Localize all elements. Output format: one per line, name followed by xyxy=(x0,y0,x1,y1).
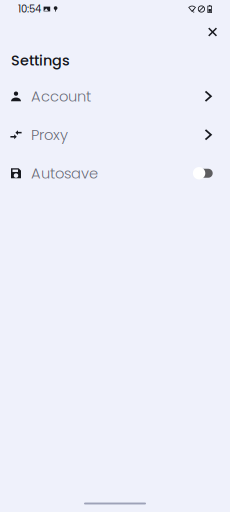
staticText: Account xyxy=(31,86,91,106)
button[interactable]: Autosave xyxy=(0,154,230,192)
staticText: Autosave xyxy=(31,163,98,183)
staticText: 10:54 xyxy=(18,2,41,16)
button[interactable]: Close xyxy=(199,18,227,46)
button[interactable]: Proxy xyxy=(0,115,230,154)
staticText: Settings xyxy=(11,50,70,71)
button[interactable]: Account xyxy=(0,77,230,115)
staticText: Proxy xyxy=(31,124,68,145)
